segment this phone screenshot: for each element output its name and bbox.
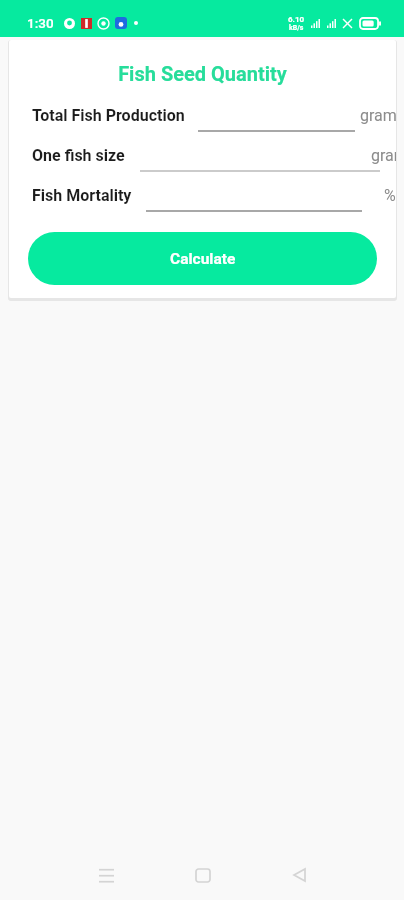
staticText: gram [371, 146, 396, 165]
staticText: 1:30 [27, 15, 54, 31]
button[interactable]: Back [276, 852, 322, 898]
staticText: % [384, 186, 396, 205]
staticText: Total Fish Production [32, 106, 185, 125]
staticText: 6.10 [288, 15, 305, 24]
staticText: gram [360, 106, 396, 125]
staticText: kB/s [289, 24, 304, 32]
button[interactable]: Calculate [28, 232, 377, 285]
staticText: Calculate [170, 250, 236, 268]
staticText: One fish size [32, 146, 125, 165]
staticText: Fish Mortality [32, 186, 132, 205]
staticText: Fish Seed Quantity [9, 62, 396, 85]
button[interactable]: Recent apps [83, 852, 129, 898]
button[interactable]: Home [180, 852, 226, 898]
